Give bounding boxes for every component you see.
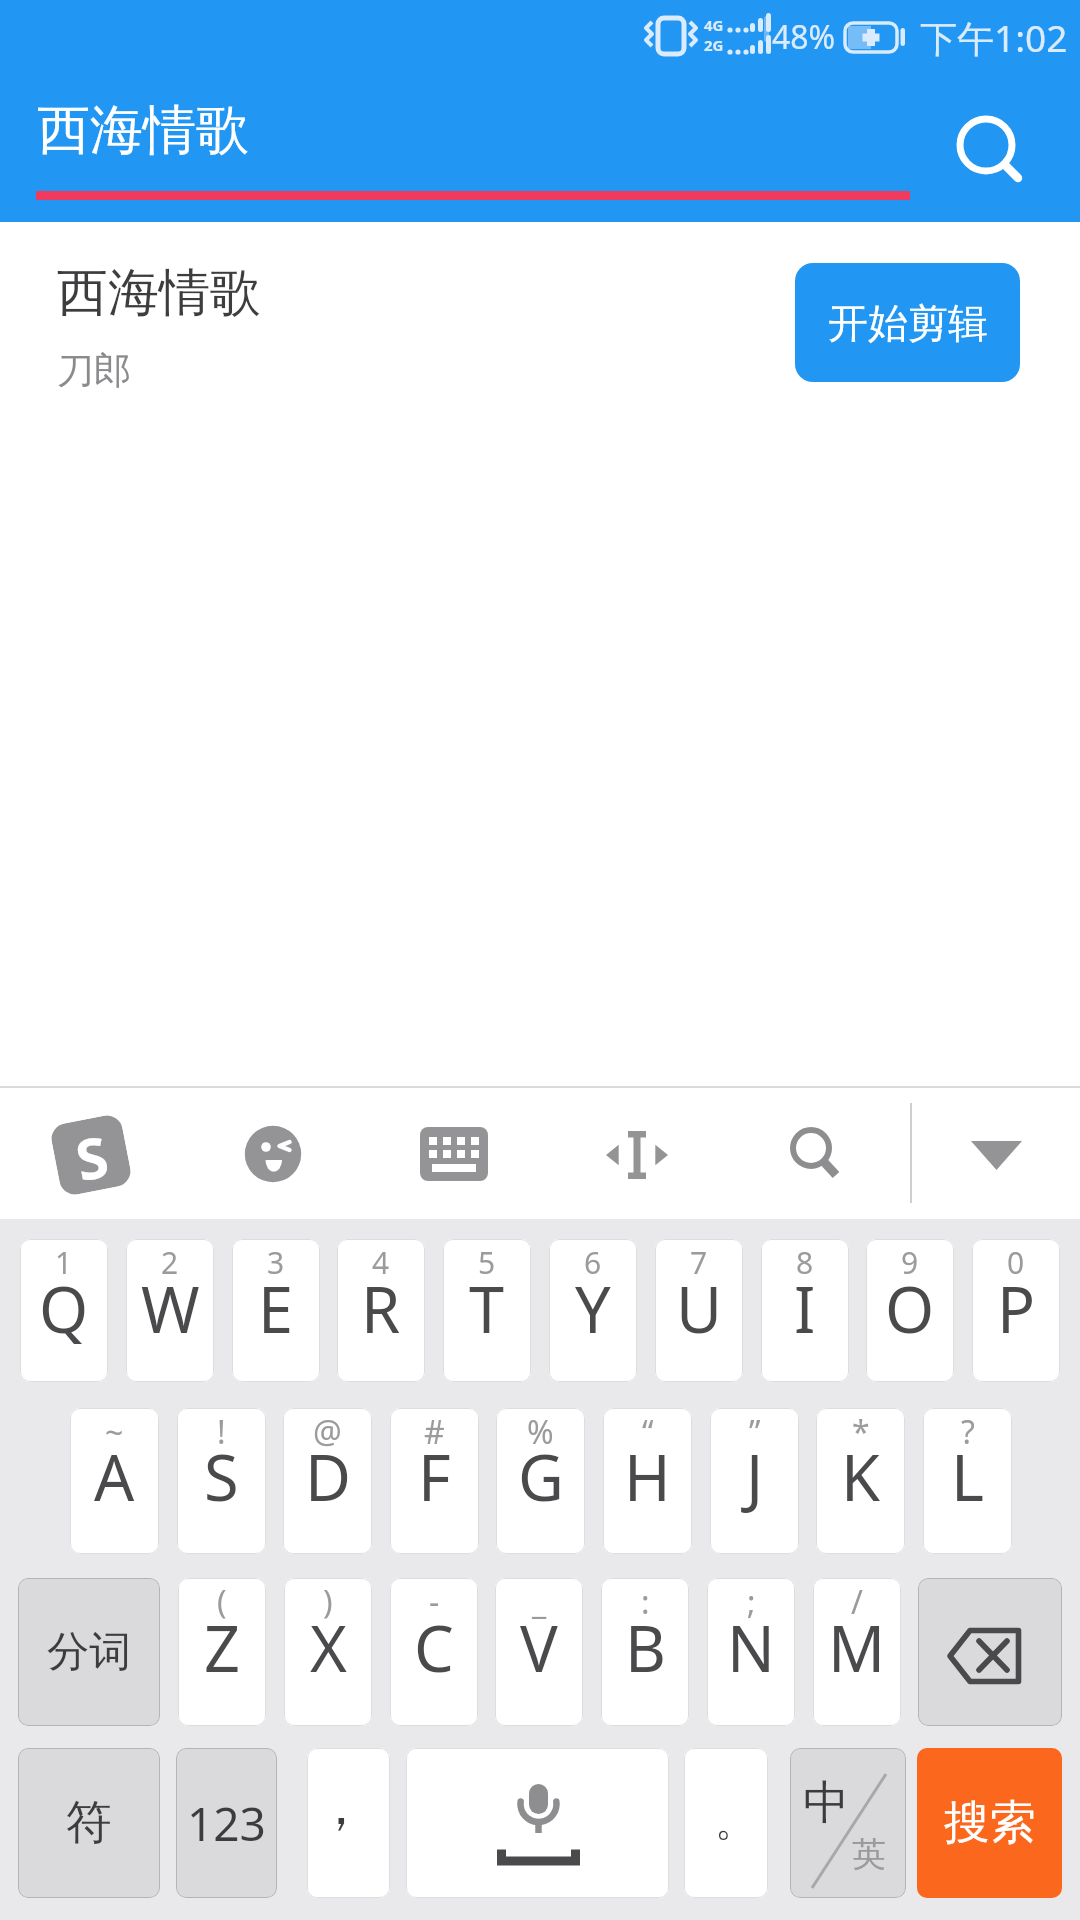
button[interactable]: 开始剪辑 xyxy=(795,263,1020,382)
button[interactable]: @ xyxy=(283,1408,372,1554)
button[interactable]: 0 xyxy=(972,1239,1060,1382)
button[interactable]: _ xyxy=(495,1578,583,1726)
staticText: 2 xyxy=(161,1242,179,1283)
staticText: ” xyxy=(749,1410,761,1454)
staticText: U xyxy=(676,1266,723,1352)
button[interactable] xyxy=(420,1127,490,1183)
staticText: * xyxy=(852,1410,870,1454)
staticText: M xyxy=(828,1605,886,1691)
button[interactable]: ? xyxy=(923,1408,1012,1554)
staticText: O xyxy=(885,1266,935,1352)
staticText: 9 xyxy=(901,1242,919,1283)
staticText: X xyxy=(310,1605,347,1691)
staticText: 下午1:02 xyxy=(920,12,1068,63)
button[interactable] xyxy=(406,1748,669,1898)
staticText: 4 xyxy=(372,1242,390,1283)
staticText: 0 xyxy=(1007,1242,1025,1283)
button[interactable]: 分词 xyxy=(18,1578,160,1726)
button[interactable]: 中 xyxy=(790,1748,906,1898)
staticText: ! xyxy=(217,1410,226,1454)
staticText: - xyxy=(429,1580,440,1624)
button[interactable]: 搜索 xyxy=(917,1748,1062,1898)
staticText: 刀郎 xyxy=(57,347,131,394)
staticText: 5 xyxy=(478,1242,496,1283)
staticText: # xyxy=(424,1410,445,1454)
button[interactable]: ” xyxy=(710,1408,799,1554)
staticText: 分词 xyxy=(47,1626,131,1679)
staticText: ? xyxy=(961,1410,975,1454)
staticText: 3 xyxy=(267,1242,285,1283)
button[interactable]: 1 xyxy=(20,1239,108,1382)
staticText: : xyxy=(641,1580,650,1624)
button[interactable]: ~ xyxy=(70,1408,159,1554)
button[interactable]: ; xyxy=(707,1578,795,1726)
button[interactable]: “ xyxy=(603,1408,692,1554)
staticText: ~ xyxy=(105,1410,124,1454)
staticText: H xyxy=(624,1434,671,1520)
button[interactable]: : xyxy=(601,1578,689,1726)
button[interactable]: ( xyxy=(178,1578,266,1726)
button[interactable]: 。 xyxy=(684,1748,768,1898)
staticText: I xyxy=(794,1266,816,1352)
staticText: A xyxy=(94,1434,135,1520)
button[interactable]: * xyxy=(816,1408,905,1554)
button[interactable]: - xyxy=(390,1578,478,1726)
staticText: 西海情歌 xyxy=(57,261,261,325)
staticText: ， xyxy=(315,1774,367,1840)
staticText: F xyxy=(418,1434,451,1520)
button[interactable] xyxy=(245,1126,305,1186)
staticText: L xyxy=(951,1434,985,1520)
staticText: 8 xyxy=(796,1242,814,1283)
staticText: V xyxy=(520,1605,558,1691)
staticText: P xyxy=(997,1266,1036,1352)
staticText: 1 xyxy=(55,1242,73,1283)
staticText: T xyxy=(469,1266,505,1352)
button[interactable]: / xyxy=(813,1578,901,1726)
staticText: 符 xyxy=(66,1794,112,1852)
staticText: ) xyxy=(323,1580,333,1624)
button[interactable] xyxy=(784,1122,848,1186)
staticText: 48% xyxy=(772,15,836,59)
button[interactable]: 2 xyxy=(126,1239,214,1382)
button[interactable]: 4 xyxy=(337,1239,425,1382)
staticText: _ xyxy=(532,1580,547,1624)
button[interactable]: 9 xyxy=(866,1239,954,1382)
button[interactable]: ! xyxy=(177,1408,266,1554)
staticText: S xyxy=(69,1117,114,1193)
staticText: J xyxy=(746,1434,764,1520)
staticText: ( xyxy=(217,1580,227,1624)
staticText: B xyxy=(625,1605,666,1691)
staticText: 英 xyxy=(852,1833,886,1876)
button[interactable] xyxy=(918,1578,1062,1726)
staticText: 7 xyxy=(690,1242,708,1283)
button[interactable]: 8 xyxy=(761,1239,849,1382)
staticText: R xyxy=(361,1266,401,1352)
staticText: 2G xyxy=(704,35,724,55)
staticText: 中 xyxy=(803,1774,849,1832)
staticText: E xyxy=(258,1266,294,1352)
staticText: W xyxy=(141,1266,200,1352)
button[interactable]: 3 xyxy=(232,1239,320,1382)
button[interactable] xyxy=(960,1130,1034,1180)
button[interactable]: 6 xyxy=(549,1239,637,1382)
button[interactable]: S xyxy=(49,1113,133,1197)
staticText: 西海情歌 xyxy=(37,97,249,164)
button[interactable]: 符 xyxy=(18,1748,160,1898)
button[interactable]: % xyxy=(496,1408,585,1554)
staticText: N xyxy=(727,1605,775,1691)
button[interactable]: # xyxy=(390,1408,479,1554)
staticText: D xyxy=(305,1434,351,1520)
staticText: S xyxy=(204,1434,239,1520)
button[interactable] xyxy=(945,105,1025,185)
button[interactable]: ) xyxy=(284,1578,372,1726)
button[interactable]: ， xyxy=(307,1748,390,1898)
button[interactable] xyxy=(602,1126,672,1184)
button[interactable]: 7 xyxy=(655,1239,743,1382)
staticText: K xyxy=(841,1434,880,1520)
button[interactable]: 5 xyxy=(443,1239,531,1382)
staticText: Y xyxy=(575,1266,611,1352)
staticText: 6 xyxy=(584,1242,602,1283)
staticText: Z xyxy=(204,1605,241,1691)
staticText: / xyxy=(851,1580,863,1624)
button[interactable]: 123 xyxy=(176,1748,277,1898)
